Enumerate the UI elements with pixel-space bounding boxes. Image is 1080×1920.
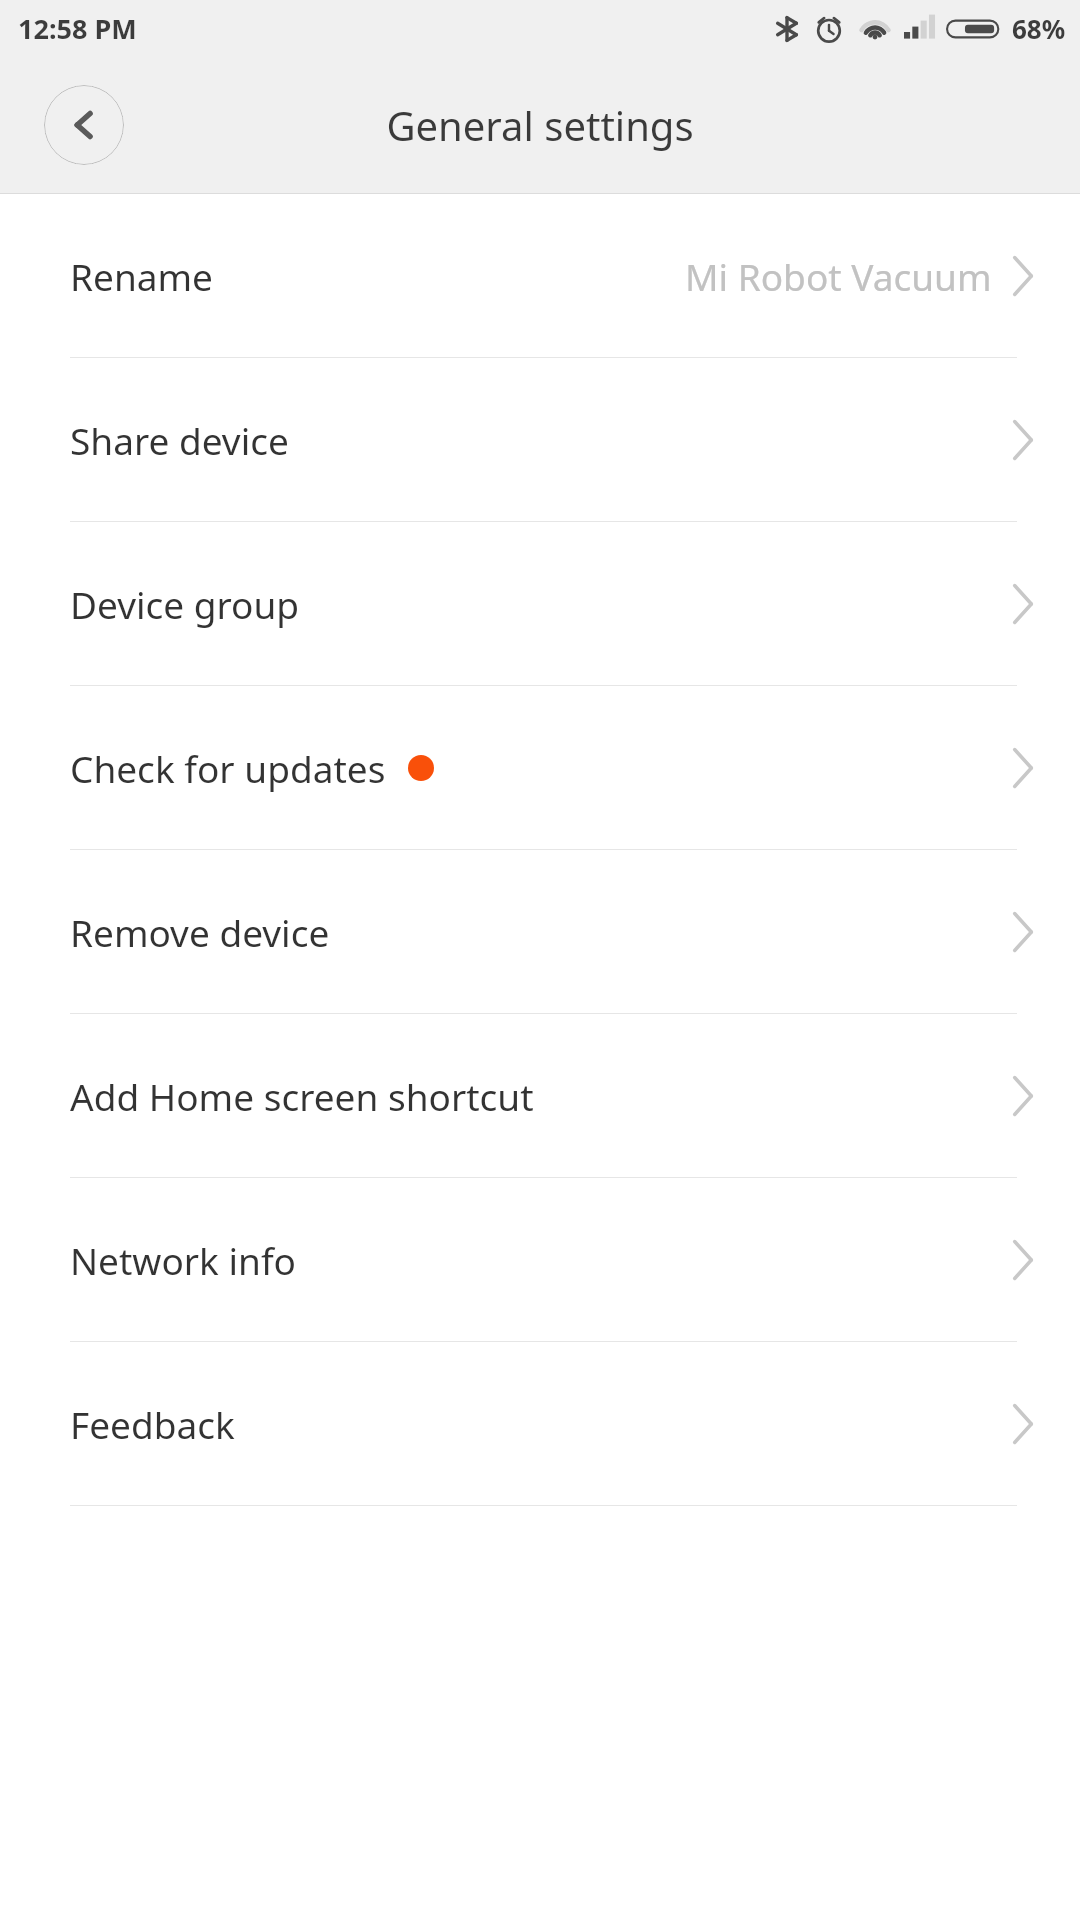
button[interactable]: Network info xyxy=(0,1178,1080,1342)
staticText: 68% xyxy=(1012,11,1066,46)
staticText: 12:58 PM xyxy=(18,10,137,47)
staticText: Check for updates xyxy=(70,743,386,793)
staticText: Remove device xyxy=(70,907,330,957)
staticText: General settings xyxy=(386,98,694,152)
button[interactable]: Check for updates xyxy=(0,686,1080,850)
staticText: Add Home screen shortcut xyxy=(70,1071,534,1121)
button[interactable]: Add Home screen shortcut xyxy=(0,1014,1080,1178)
button[interactable]: Feedback xyxy=(0,1342,1080,1506)
staticText: Rename xyxy=(70,251,213,301)
staticText: Mi Robot Vacuum xyxy=(685,251,992,301)
button[interactable]: Rename xyxy=(0,194,1080,358)
button[interactable]: Back xyxy=(44,85,124,165)
button[interactable]: Device group xyxy=(0,522,1080,686)
staticText: Network info xyxy=(70,1235,296,1285)
staticText: Share device xyxy=(70,415,289,465)
button[interactable]: Remove device xyxy=(0,850,1080,1014)
button[interactable]: Share device xyxy=(0,358,1080,522)
staticText: Feedback xyxy=(70,1399,235,1449)
staticText: Device group xyxy=(70,579,300,629)
